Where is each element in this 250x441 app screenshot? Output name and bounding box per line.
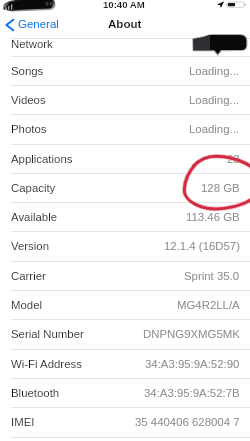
button[interactable]: Videos <box>0 85 250 114</box>
staticText: 12.1.4 (16D57) <box>164 240 240 253</box>
button[interactable]: Serial Number <box>0 319 250 348</box>
button[interactable]: General <box>0 18 65 34</box>
staticText: 34:A3:95:9A:52:7B <box>144 387 240 400</box>
staticText: DNPNG9XMG5MK <box>143 328 240 341</box>
button[interactable]: Wi-Fi Address <box>0 349 250 378</box>
staticText: Capacity <box>11 182 56 195</box>
staticText: 23 <box>227 153 240 166</box>
staticText: Wi-Fi Address <box>11 358 82 371</box>
staticText: Videos <box>11 94 46 107</box>
button[interactable]: Available <box>0 202 250 231</box>
staticText: Model <box>11 299 43 312</box>
staticText: Loading... <box>189 123 240 136</box>
staticText: 113.46 GB <box>186 211 240 224</box>
other: Highlight <box>0 0 250 441</box>
staticText: IMEI <box>11 416 35 429</box>
staticText: 10:40 AM <box>103 0 145 10</box>
button[interactable]: Capacity <box>0 173 250 202</box>
button[interactable]: Applications <box>0 144 250 173</box>
staticText: About <box>108 17 142 30</box>
button[interactable]: Version <box>0 231 250 260</box>
staticText: Serial Number <box>11 328 84 341</box>
button[interactable]: Network <box>0 36 250 56</box>
staticText: MG4R2LL/A <box>177 299 240 312</box>
staticText: Version <box>11 240 49 253</box>
staticText: Loading... <box>189 94 240 107</box>
staticText: General <box>18 18 59 31</box>
button[interactable]: Songs <box>0 56 250 85</box>
staticText: Bluetooth <box>11 387 60 400</box>
staticText: 128 GB <box>201 182 240 195</box>
staticText: 34:A3:95:9A:52:90 <box>145 358 240 371</box>
button[interactable]: Bluetooth <box>0 378 250 407</box>
staticText: 35 440406 628004 7 <box>135 416 240 429</box>
staticText: Network <box>11 38 53 51</box>
staticText: Songs <box>11 65 44 78</box>
staticText: Loading... <box>189 65 240 78</box>
staticText: Sprint 35.0 <box>184 270 240 283</box>
staticText: Available <box>11 211 58 224</box>
button[interactable]: Photos <box>0 114 250 143</box>
staticText: Carrier <box>11 270 46 283</box>
button[interactable]: Model <box>0 290 250 319</box>
staticText: Applications <box>11 153 73 166</box>
staticText: Photos <box>11 123 47 136</box>
button[interactable]: Carrier <box>0 261 250 290</box>
button[interactable]: IMEI <box>0 407 250 436</box>
